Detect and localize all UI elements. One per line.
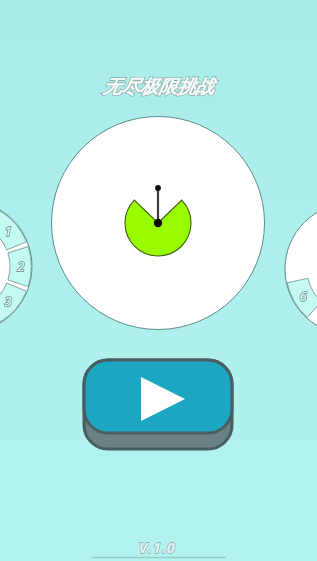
- button[interactable]: Play: [0, 0, 317, 561]
